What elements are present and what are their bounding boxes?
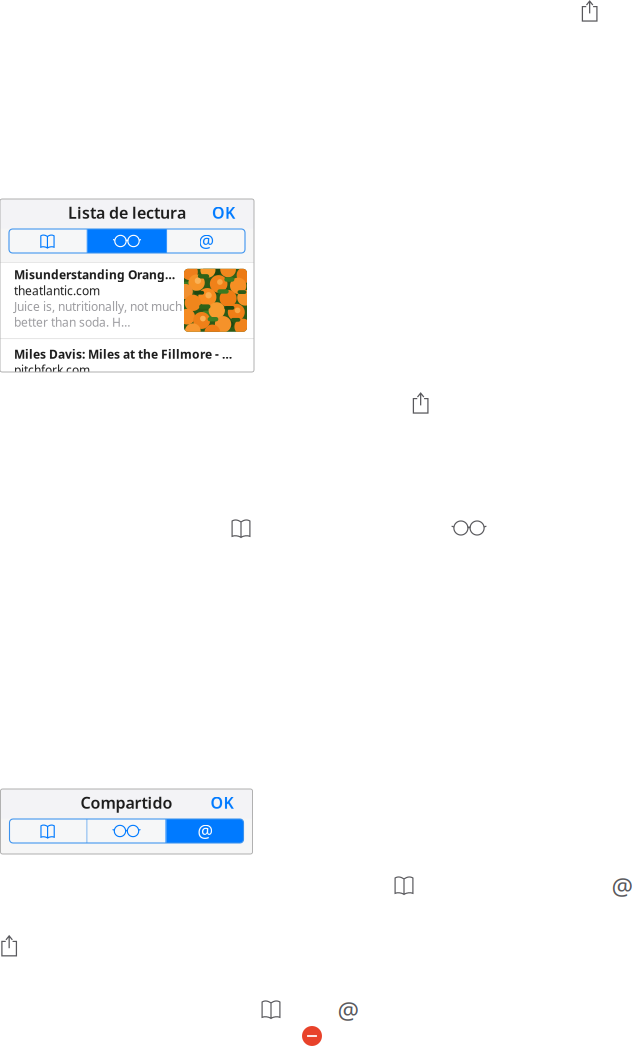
button[interactable]: Misunderstanding Orang… bbox=[0, 263, 254, 338]
button[interactable] bbox=[88, 229, 166, 253]
button[interactable] bbox=[87, 819, 165, 843]
staticText: @ bbox=[611, 870, 633, 902]
button[interactable]: Shared Links bbox=[613, 878, 632, 894]
button[interactable]: Miles Davis: Miles at the Fillmore - Mil… bbox=[0, 339, 254, 379]
staticText: theatlantic.com bbox=[14, 282, 100, 298]
staticText: @ bbox=[197, 819, 213, 842]
button[interactable]: OK bbox=[203, 199, 254, 229]
button[interactable]: Share bbox=[409, 392, 431, 414]
staticText: OK bbox=[210, 792, 233, 813]
button[interactable] bbox=[8, 229, 87, 253]
button[interactable]: Share bbox=[578, 0, 600, 22]
staticText: Miles Davis: Miles at the Fillmore - Mil… bbox=[14, 346, 238, 362]
button[interactable]: Bookmarks bbox=[261, 999, 281, 1019]
button[interactable]: Reading List bbox=[451, 520, 487, 536]
button[interactable] bbox=[9, 819, 87, 843]
staticText: @ bbox=[199, 229, 215, 252]
button[interactable]: OK bbox=[201, 789, 252, 819]
staticText: Lista de lectura bbox=[68, 202, 186, 223]
staticText: Compartido bbox=[80, 792, 172, 813]
staticText: Juice is, nutritionally, not much bbox=[14, 298, 182, 314]
button[interactable]: @ bbox=[166, 819, 244, 843]
staticText: pitchfork.com bbox=[14, 362, 90, 378]
staticText: Misunderstanding Orang… bbox=[14, 267, 175, 283]
button[interactable]: Bookmarks bbox=[394, 875, 414, 895]
button[interactable]: Bookmarks bbox=[231, 518, 251, 538]
staticText: @ bbox=[337, 994, 359, 1026]
button[interactable]: Shared Links bbox=[339, 1002, 358, 1018]
staticText: OK bbox=[212, 202, 235, 223]
button[interactable]: Remove bbox=[302, 1026, 322, 1046]
button[interactable]: Share bbox=[0, 935, 19, 957]
button[interactable]: @ bbox=[167, 229, 246, 253]
staticText: better than soda. H… bbox=[14, 314, 130, 330]
